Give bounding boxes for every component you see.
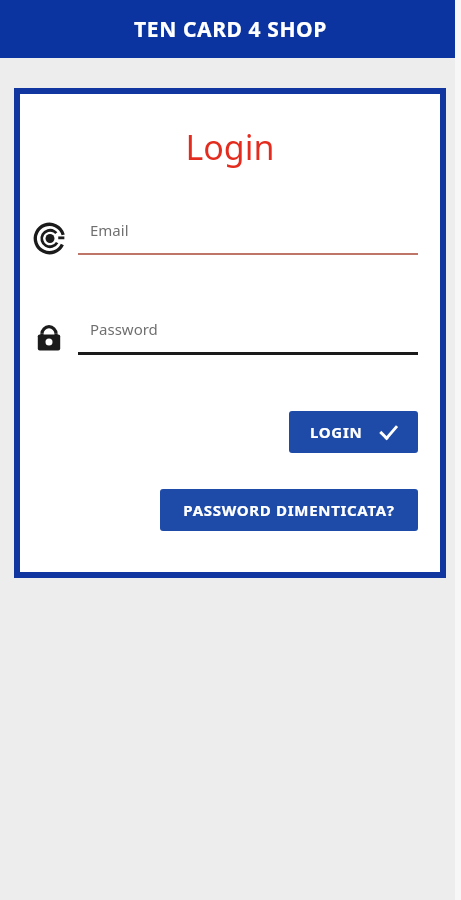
other: Password <box>33 321 65 353</box>
staticText: Email <box>90 220 129 240</box>
staticText: TEN CARD 4 SHOP <box>134 15 327 44</box>
button[interactable]: Email <box>20 210 440 272</box>
button[interactable]: LOGIN <box>289 411 418 453</box>
staticText: LOGIN <box>310 422 363 442</box>
button[interactable]: Password <box>20 309 440 371</box>
staticText: Password <box>90 319 158 339</box>
staticText: PASSWORD DIMENTICATA? <box>183 500 395 520</box>
other: Email <box>33 222 66 255</box>
button[interactable]: PASSWORD DIMENTICATA? <box>160 489 418 531</box>
staticText: Login <box>185 124 275 170</box>
